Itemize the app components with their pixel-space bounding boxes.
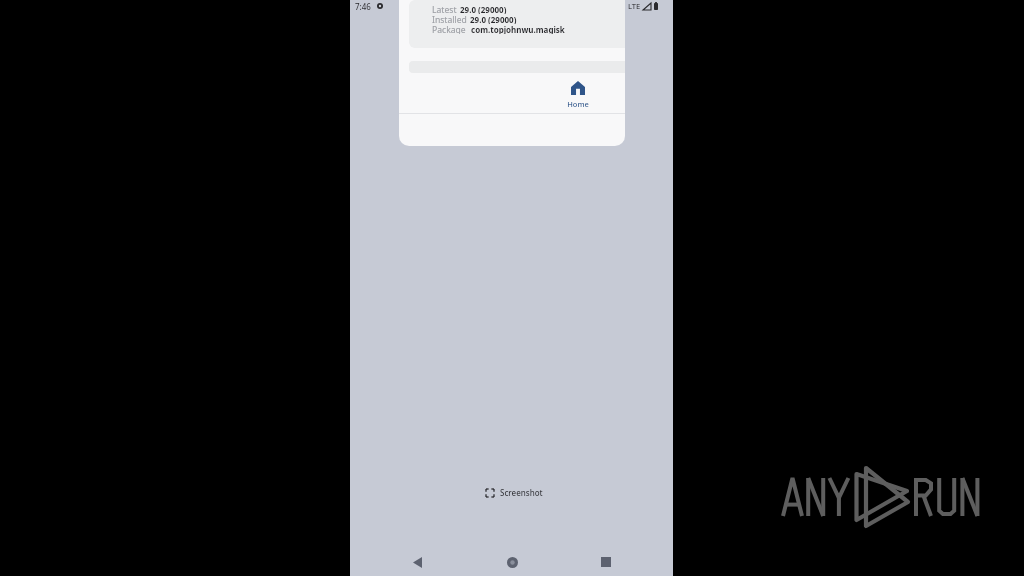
staticText: com.topjohnwu.magisk xyxy=(471,24,565,34)
staticText: Screenshot xyxy=(500,487,543,498)
staticText: Home xyxy=(567,99,589,109)
button[interactable]: Screenshot xyxy=(486,487,543,498)
button[interactable]: Recent apps xyxy=(596,552,616,572)
button[interactable]: Home xyxy=(548,73,608,113)
staticText: 29.0 (29000) xyxy=(470,14,517,24)
staticText: 7:46 xyxy=(355,1,371,12)
button[interactable]: Back xyxy=(407,552,427,572)
button[interactable]: Home xyxy=(502,552,522,572)
staticText: Installed xyxy=(432,14,467,24)
staticText: LTE xyxy=(628,1,641,11)
staticText: Latest xyxy=(432,4,457,14)
staticText: 29.0 (29000) xyxy=(460,4,507,14)
other: Home xyxy=(571,81,585,95)
staticText: Package xyxy=(432,24,466,34)
